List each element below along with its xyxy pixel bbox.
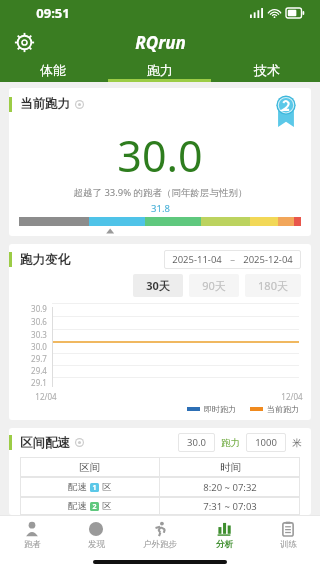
staticText: 配速 bbox=[68, 481, 87, 493]
button[interactable]: 2025-11-04 bbox=[164, 250, 301, 269]
staticText: 30.0 bbox=[187, 436, 206, 449]
staticText: 户外跑步 bbox=[143, 539, 177, 550]
staticText: 30.0 bbox=[31, 341, 47, 352]
staticText: 1 bbox=[92, 483, 97, 492]
staticText: 31.8 bbox=[151, 202, 170, 215]
button[interactable]: Level badge 2 bbox=[271, 94, 301, 124]
staticText: 当前跑力 bbox=[20, 96, 70, 112]
staticText: 技术 bbox=[254, 62, 280, 78]
button[interactable]: 户外跑步 bbox=[128, 516, 192, 554]
staticText: 即时跑力 bbox=[204, 404, 236, 414]
staticText: 时间 bbox=[220, 461, 241, 474]
staticText: 2 bbox=[92, 502, 97, 511]
button[interactable]: 30.0 bbox=[178, 433, 215, 452]
staticText: 30.6 bbox=[31, 316, 47, 327]
staticText: 30.9 bbox=[31, 303, 47, 314]
staticText: 30.0 bbox=[117, 126, 203, 185]
staticText: 12/04 bbox=[35, 391, 57, 402]
staticText: 跑力变化 bbox=[20, 252, 70, 268]
staticText: 区 bbox=[102, 500, 112, 512]
staticText: 跑力 bbox=[147, 62, 173, 78]
button[interactable]: 跑力 bbox=[106, 58, 213, 82]
button[interactable]: 技术 bbox=[213, 58, 320, 82]
button[interactable]: 分析 bbox=[192, 516, 256, 554]
staticText: 区 bbox=[102, 481, 112, 493]
button[interactable]: 体能 bbox=[0, 58, 106, 82]
staticText: 跑者 bbox=[24, 539, 41, 550]
staticText: 1000 bbox=[255, 436, 277, 449]
staticText: 7:31 ~ 07:03 bbox=[203, 500, 257, 513]
button[interactable]: 发现 bbox=[64, 516, 128, 554]
button[interactable]: Settings bbox=[10, 28, 38, 56]
staticText: 2025-11-04 bbox=[172, 253, 222, 266]
staticText: 配速 bbox=[68, 500, 87, 512]
staticText: 30天 bbox=[146, 278, 170, 293]
staticText: 分析 bbox=[216, 539, 233, 550]
staticText: 12/04 bbox=[281, 391, 303, 402]
button[interactable]: 180天 bbox=[245, 274, 301, 297]
staticText: 180天 bbox=[258, 278, 288, 293]
staticText: – bbox=[230, 253, 235, 266]
staticText: 区间配速 bbox=[20, 435, 70, 451]
staticText: RQrun bbox=[135, 31, 186, 54]
staticText: 跑力 bbox=[221, 437, 240, 449]
staticText: 29.7 bbox=[31, 353, 47, 364]
staticText: 区间 bbox=[79, 461, 100, 474]
button[interactable]: 跑者 bbox=[0, 516, 64, 554]
staticText: 训练 bbox=[280, 539, 297, 550]
button[interactable]: 90天 bbox=[189, 274, 239, 297]
button[interactable]: 训练 bbox=[256, 516, 320, 554]
button[interactable]: 30天 bbox=[133, 274, 183, 297]
staticText: 30.3 bbox=[31, 329, 47, 340]
button[interactable]: 配速 bbox=[20, 477, 300, 497]
button[interactable]: 配速 bbox=[20, 497, 300, 515]
button[interactable]: 1000 bbox=[246, 433, 286, 452]
staticText: 当前跑力 bbox=[267, 404, 299, 414]
staticText: 2025-12-04 bbox=[243, 253, 293, 266]
staticText: 米 bbox=[292, 437, 302, 449]
staticText: 09:51 bbox=[36, 4, 70, 22]
staticText: 8:20 ~ 07:32 bbox=[203, 481, 257, 494]
staticText: 体能 bbox=[40, 62, 66, 78]
staticText: 超越了 33.9% 的跑者（同年龄层与性别） bbox=[73, 186, 248, 199]
staticText: 29.1 bbox=[31, 377, 47, 388]
staticText: 29.4 bbox=[31, 365, 47, 376]
staticText: 发现 bbox=[88, 539, 105, 550]
staticText: 90天 bbox=[202, 278, 226, 293]
